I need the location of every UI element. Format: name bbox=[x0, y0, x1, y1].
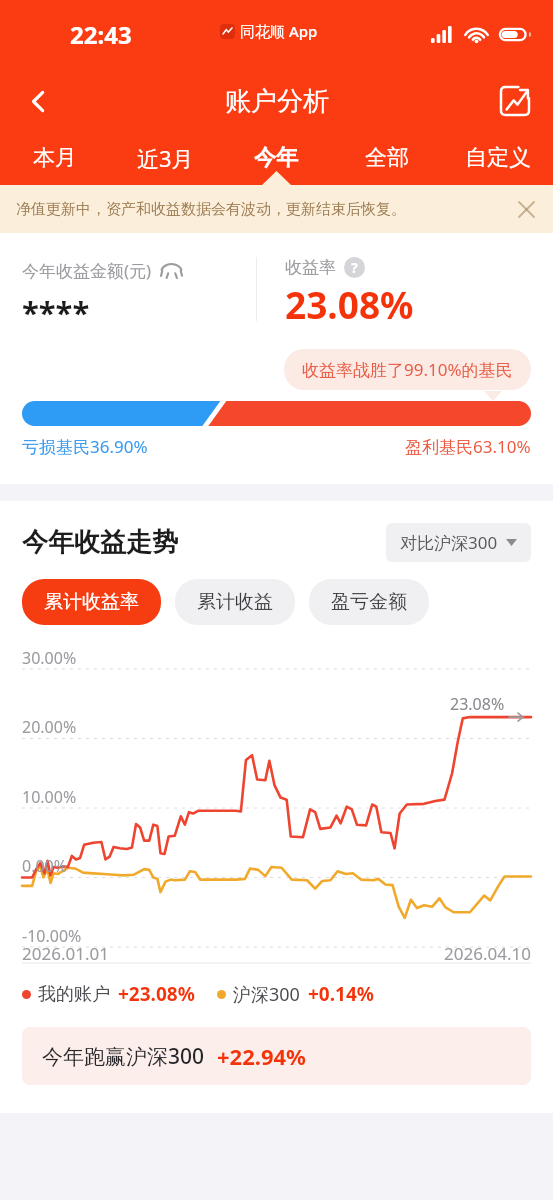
button[interactable]: 近3月 bbox=[110, 130, 220, 185]
staticText: 我的账户 bbox=[38, 983, 110, 1006]
button[interactable]: 盈亏金额 bbox=[309, 579, 429, 625]
staticText: +23.08% bbox=[118, 981, 195, 1007]
staticText: 今年跑赢沪深300 bbox=[42, 1042, 205, 1071]
staticText: 累计收益率 bbox=[44, 590, 139, 614]
button[interactable]: 累计收益率 bbox=[22, 579, 161, 625]
button[interactable]: Share bbox=[491, 77, 539, 125]
staticText: 自定义 bbox=[465, 144, 531, 172]
staticText: 累计收益 bbox=[197, 590, 273, 614]
staticText: 22:43 bbox=[70, 18, 132, 51]
button[interactable]: Help bbox=[344, 257, 365, 278]
staticText: 全部 bbox=[365, 144, 409, 172]
staticText: +22.94% bbox=[217, 1041, 306, 1071]
staticText: -10.00% bbox=[22, 925, 82, 947]
staticText: 20.00% bbox=[22, 716, 77, 738]
staticText: +0.14% bbox=[308, 981, 374, 1007]
staticText: 今年 bbox=[254, 144, 298, 172]
staticText: 盈利基民63.10% bbox=[405, 435, 531, 458]
button[interactable]: Toggle amount visibility bbox=[158, 257, 184, 283]
staticText: 今年收益金额(元) bbox=[22, 259, 152, 282]
button[interactable]: Close bbox=[511, 194, 541, 224]
staticText: 账户分析 bbox=[225, 85, 329, 118]
staticText: 今年收益走势 bbox=[22, 526, 178, 559]
staticText: 同花顺 App bbox=[240, 21, 318, 41]
button[interactable]: 今年 bbox=[220, 130, 331, 185]
button[interactable]: Back bbox=[14, 77, 62, 125]
button[interactable]: 收益率战胜了99.10%的基民 bbox=[284, 349, 531, 390]
button[interactable]: 对比沪深300 bbox=[386, 523, 531, 562]
staticText: 2026.01.01 bbox=[22, 942, 109, 965]
staticText: 亏损基民36.90% bbox=[22, 435, 148, 458]
staticText: 23.08% bbox=[285, 279, 414, 329]
staticText: 收益率战胜了99.10%的基民 bbox=[302, 358, 513, 381]
button[interactable]: 累计收益 bbox=[175, 579, 295, 625]
staticText: 0.00% bbox=[22, 855, 68, 877]
staticText: 对比沪深300 bbox=[400, 531, 498, 554]
staticText: 2026.04.10 bbox=[444, 942, 531, 965]
staticText: 本月 bbox=[33, 144, 77, 172]
staticText: 近3月 bbox=[137, 143, 194, 173]
staticText: 23.08% bbox=[450, 693, 505, 715]
button[interactable]: 今年跑赢沪深300 bbox=[22, 1027, 531, 1085]
button[interactable]: 本月 bbox=[0, 130, 110, 185]
staticText: 净值更新中，资产和收益数据会有波动，更新结束后恢复。 bbox=[16, 200, 511, 219]
button[interactable]: 全部 bbox=[331, 130, 442, 185]
staticText: 10.00% bbox=[22, 786, 77, 808]
staticText: **** bbox=[22, 291, 90, 333]
button[interactable]: 自定义 bbox=[442, 130, 553, 185]
staticText: 盈亏金额 bbox=[331, 590, 407, 614]
staticText: 收益率 bbox=[285, 257, 336, 278]
staticText: ? bbox=[351, 258, 358, 277]
staticText: 沪深300 bbox=[233, 982, 300, 1007]
staticText: 30.00% bbox=[22, 647, 77, 669]
